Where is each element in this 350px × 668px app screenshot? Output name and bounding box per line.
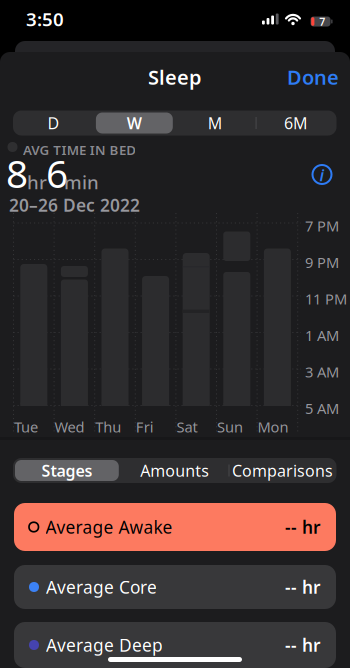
- button[interactable]: M: [175, 110, 256, 135]
- button[interactable]: Stages: [13, 458, 121, 483]
- staticText: 6: [46, 147, 68, 199]
- staticText: Fri: [136, 417, 154, 436]
- staticText: Sun: [217, 417, 243, 436]
- staticText: i: [319, 164, 324, 186]
- staticText: Average Deep: [46, 633, 163, 656]
- staticText: W: [127, 112, 142, 134]
- staticText: Stages: [41, 460, 92, 481]
- button[interactable]: More info: [309, 161, 335, 187]
- staticText: Thu: [95, 417, 121, 436]
- button[interactable]: Comparisons: [229, 458, 336, 483]
- staticText: hr: [27, 170, 47, 194]
- staticText: 8: [6, 147, 28, 199]
- staticText: -- hr: [285, 633, 321, 656]
- staticText: -- hr: [285, 575, 321, 598]
- staticText: M: [208, 112, 223, 134]
- button[interactable]: 6M: [256, 110, 336, 135]
- staticText: Average Awake: [45, 515, 172, 538]
- button[interactable]: Average Core: [14, 565, 336, 609]
- staticText: Comparisons: [232, 460, 333, 481]
- staticText: Sat: [176, 417, 197, 436]
- staticText: 3 AM: [305, 362, 339, 381]
- staticText: -- hr: [285, 515, 321, 538]
- staticText: AVG TIME IN BED: [23, 141, 136, 159]
- button[interactable]: Amounts: [121, 458, 229, 483]
- staticText: 6M: [284, 112, 308, 134]
- staticText: Tue: [14, 417, 38, 436]
- staticText: Done: [287, 64, 339, 90]
- staticText: Sleep: [148, 64, 202, 90]
- staticText: 7 PM: [305, 216, 339, 235]
- button[interactable]: Done: [287, 64, 339, 90]
- staticText: Amounts: [140, 460, 209, 481]
- button[interactable]: Average Awake: [14, 503, 336, 551]
- staticText: 9 PM: [305, 252, 339, 272]
- staticText: 20–26 Dec 2022: [9, 193, 140, 216]
- staticText: Wed: [55, 417, 85, 436]
- staticText: 5 AM: [305, 398, 339, 418]
- staticText: D: [47, 112, 59, 134]
- button[interactable]: W: [94, 110, 175, 135]
- staticText: Mon: [258, 417, 289, 436]
- staticText: 1 AM: [305, 325, 339, 345]
- button[interactable]: Average Deep: [14, 622, 336, 668]
- button[interactable]: D: [13, 110, 94, 135]
- staticText: 3:50: [26, 7, 64, 31]
- staticText: 11 PM: [305, 289, 347, 308]
- staticText: 7: [319, 14, 325, 29]
- staticText: Average Core: [46, 575, 157, 598]
- staticText: min: [64, 170, 99, 194]
